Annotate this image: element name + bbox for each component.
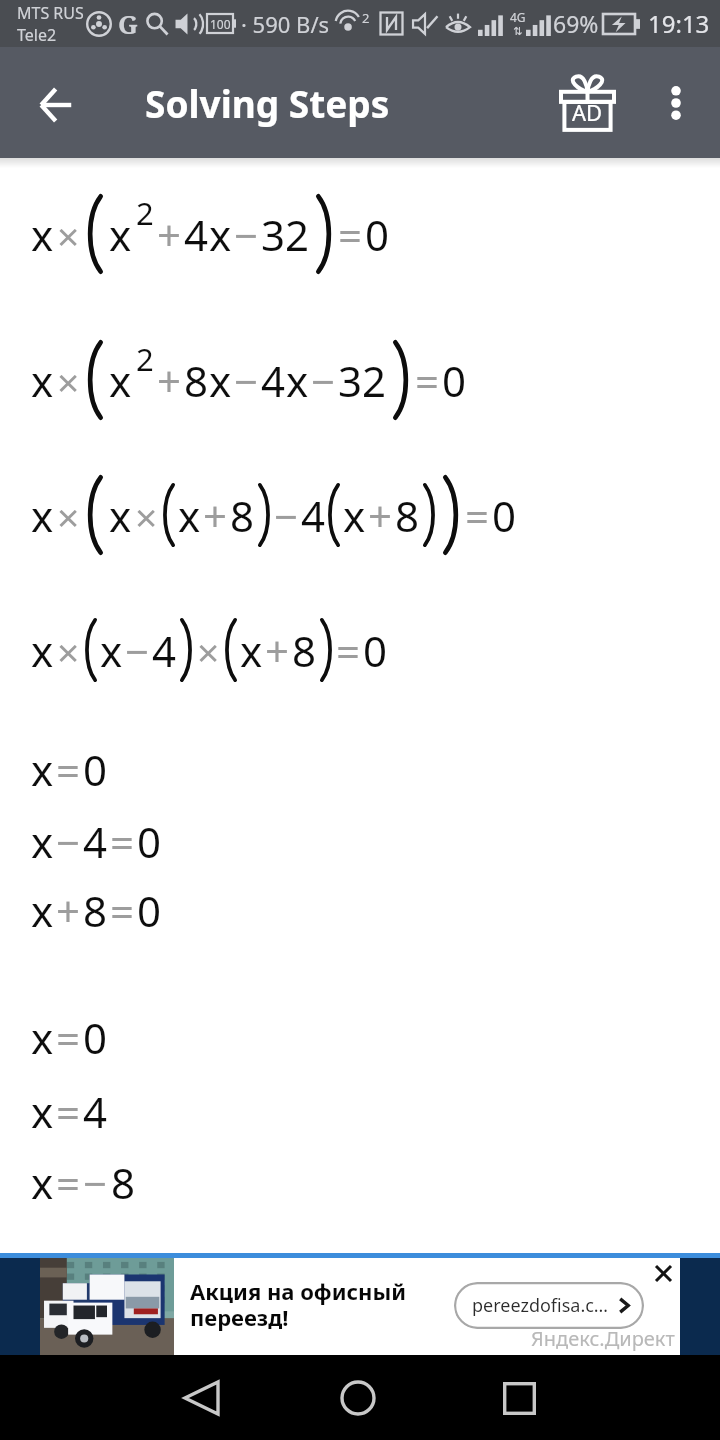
staticText: 0 xyxy=(137,882,162,939)
staticText: − xyxy=(56,813,81,870)
button[interactable]: More options xyxy=(637,47,715,158)
staticText: Акция на офисный переезд! xyxy=(190,1276,407,1333)
staticText: AD xyxy=(572,97,603,127)
staticText: 32 xyxy=(261,206,310,263)
staticText: = xyxy=(338,206,363,263)
staticText: x xyxy=(31,882,54,939)
staticText: x xyxy=(31,622,54,679)
staticText: Яндекс.Директ xyxy=(531,1325,675,1352)
staticText: x xyxy=(31,1154,54,1211)
staticText: + xyxy=(56,882,81,939)
staticText: + xyxy=(157,352,182,409)
staticText: x xyxy=(31,1083,54,1140)
staticText: = xyxy=(56,1083,81,1140)
staticText: G xyxy=(118,6,139,41)
button[interactable]: Recent apps xyxy=(479,1358,559,1438)
staticText: 8 xyxy=(111,1154,136,1211)
staticText: − xyxy=(274,487,299,544)
button[interactable]: Close ad xyxy=(648,1258,678,1288)
staticText: 0 xyxy=(492,487,517,544)
staticText: 4 xyxy=(83,1083,108,1140)
staticText: 19:13 xyxy=(648,7,710,40)
staticText: × xyxy=(57,490,80,543)
staticText: 4 xyxy=(261,352,286,409)
staticText: 0 xyxy=(365,206,390,263)
button[interactable]: Акция на офисный переезд! xyxy=(0,1258,720,1355)
button[interactable]: Ad gift xyxy=(537,47,637,158)
staticText: 0 xyxy=(83,1009,108,1066)
button[interactable]: Home xyxy=(318,1358,398,1438)
staticText: 4 xyxy=(152,622,177,679)
staticText: 4G xyxy=(510,9,526,25)
staticText: 8 xyxy=(395,487,420,544)
staticText: = xyxy=(465,487,490,544)
staticText: − xyxy=(234,206,259,263)
staticText: x xyxy=(209,206,232,263)
button[interactable]: Back xyxy=(0,47,112,158)
staticText: x xyxy=(31,741,54,798)
staticText: − xyxy=(125,622,150,679)
staticText: + xyxy=(203,487,228,544)
staticText: 2 xyxy=(362,9,370,27)
staticText: 0 xyxy=(83,741,108,798)
staticText: Tele2 xyxy=(17,24,57,46)
staticText: = xyxy=(415,352,440,409)
staticText: 0 xyxy=(137,813,162,870)
staticText: + xyxy=(368,487,393,544)
staticText: x xyxy=(31,813,54,870)
staticText: + xyxy=(157,206,182,263)
staticText: 69% xyxy=(553,8,599,39)
staticText: 0 xyxy=(363,622,388,679)
staticText: = xyxy=(56,1009,81,1066)
staticText: 4 xyxy=(184,206,209,263)
staticText: 2 xyxy=(136,338,154,380)
staticText: 0 xyxy=(442,352,467,409)
staticText: − xyxy=(83,1154,108,1211)
staticText: × xyxy=(197,625,220,678)
staticText: = xyxy=(56,741,81,798)
staticText: Solving Steps xyxy=(145,78,390,128)
staticText: = xyxy=(110,813,135,870)
staticText: x xyxy=(343,487,366,544)
staticText: x xyxy=(209,352,232,409)
staticText: 32 xyxy=(338,352,387,409)
staticText: × xyxy=(135,490,158,543)
staticText: + xyxy=(265,622,290,679)
staticText: x xyxy=(109,352,132,409)
staticText: 8 xyxy=(230,487,255,544)
staticText: x xyxy=(31,352,54,409)
staticText: MTS RUS xyxy=(17,2,84,24)
button[interactable]: pereezdofisa.c… xyxy=(454,1282,644,1329)
staticText: x xyxy=(240,622,263,679)
staticText: = xyxy=(110,882,135,939)
staticText: = xyxy=(56,1154,81,1211)
staticText: x xyxy=(286,352,309,409)
staticText: ⇅ xyxy=(513,25,523,38)
staticText: x xyxy=(109,206,132,263)
staticText: x xyxy=(31,206,54,263)
staticText: − xyxy=(311,352,336,409)
staticText: × xyxy=(57,209,80,262)
staticText: 4 xyxy=(301,487,326,544)
staticText: × xyxy=(57,355,80,408)
staticText: 8 xyxy=(292,622,317,679)
staticText: 2 xyxy=(136,192,154,234)
staticText: 8 xyxy=(83,882,108,939)
staticText: · 590 B/s xyxy=(241,9,330,39)
staticText: x xyxy=(31,1009,54,1066)
staticText: 100 xyxy=(210,16,231,32)
button[interactable]: Back xyxy=(161,1358,241,1438)
staticText: x xyxy=(109,487,132,544)
staticText: pereezdofisa.c… xyxy=(472,1293,609,1318)
staticText: x xyxy=(31,487,54,544)
staticText: × xyxy=(57,625,80,678)
staticText: x xyxy=(100,622,123,679)
staticText: 8 xyxy=(184,352,209,409)
staticText: − xyxy=(234,352,259,409)
staticText: x xyxy=(178,487,201,544)
staticText: 4 xyxy=(83,813,108,870)
staticText: = xyxy=(336,622,361,679)
